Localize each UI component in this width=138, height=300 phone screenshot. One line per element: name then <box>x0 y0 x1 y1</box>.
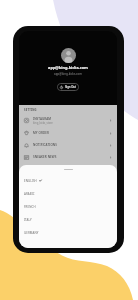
button[interactable]: ENGLISH <box>19 174 117 187</box>
staticText: INSTAGRAM <box>33 117 52 121</box>
other: Selected <box>39 179 42 182</box>
button[interactable]: GERMANY <box>19 226 117 239</box>
staticText: app@king-kicks.com <box>19 65 117 70</box>
button[interactable]: MY ORDER <box>19 127 117 139</box>
button[interactable]: INSTAGRAM <box>19 114 117 127</box>
button[interactable]: ITALY <box>19 213 117 226</box>
staticText: SNEAKER NEWS <box>33 155 57 159</box>
button[interactable]: NOTIFICATIONS <box>19 139 117 151</box>
staticText: SETTING <box>24 108 37 112</box>
staticText: FRENCH <box>24 205 36 209</box>
staticText: king_kicks_store <box>33 121 53 125</box>
staticText: ARABIC <box>24 192 35 196</box>
staticText: ITALY <box>24 218 32 222</box>
staticText: NOTIFICATIONS <box>33 143 58 147</box>
staticText: app@king-kicks.com <box>19 72 117 76</box>
staticText: Sign Out <box>65 85 76 89</box>
button[interactable]: Sign Out <box>57 83 79 91</box>
button[interactable]: SNEAKER NEWS <box>19 151 117 163</box>
button[interactable]: FRENCH <box>19 200 117 213</box>
staticText: ENGLISH <box>24 179 37 183</box>
staticText: MY ORDER <box>33 131 50 135</box>
button[interactable]: ARABIC <box>19 187 117 200</box>
staticText: GERMANY <box>24 231 39 235</box>
